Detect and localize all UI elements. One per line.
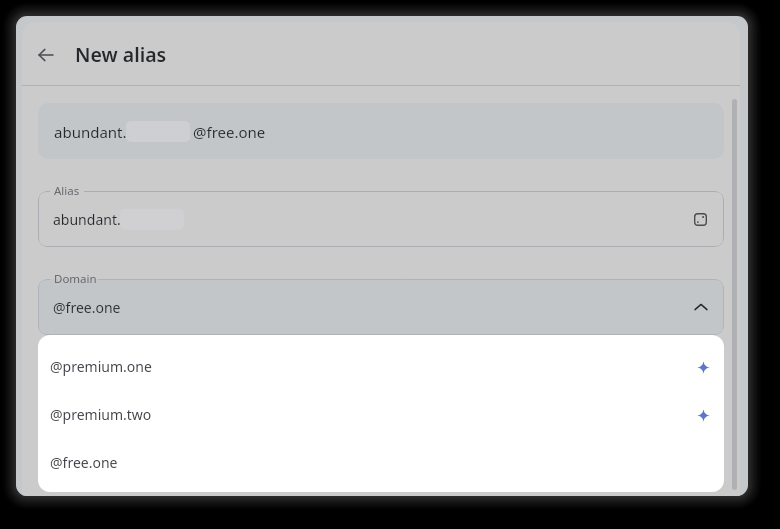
button[interactable]: Domain selector: [38, 279, 724, 335]
staticText: @free.one: [193, 122, 266, 142]
staticText: New alias: [75, 41, 167, 68]
staticText: @free.one: [53, 298, 121, 317]
button[interactable]: @free.one: [38, 439, 724, 487]
button[interactable]: abundant.: [38, 103, 724, 159]
button[interactable]: abundant.: [38, 191, 724, 247]
staticText: abundant.: [53, 210, 121, 229]
button[interactable]: @premium.one: [38, 343, 724, 391]
button[interactable]: @premium.two: [38, 391, 724, 439]
staticText: abundant.: [54, 122, 127, 142]
button[interactable]: Generate random alias: [681, 200, 719, 238]
staticText: @premium.two: [50, 405, 152, 424]
staticText: Domain: [54, 271, 97, 287]
staticText: Alias: [54, 183, 80, 199]
staticText: @premium.one: [50, 357, 152, 376]
staticText: @free.one: [50, 453, 118, 472]
button[interactable]: Back: [19, 28, 73, 82]
